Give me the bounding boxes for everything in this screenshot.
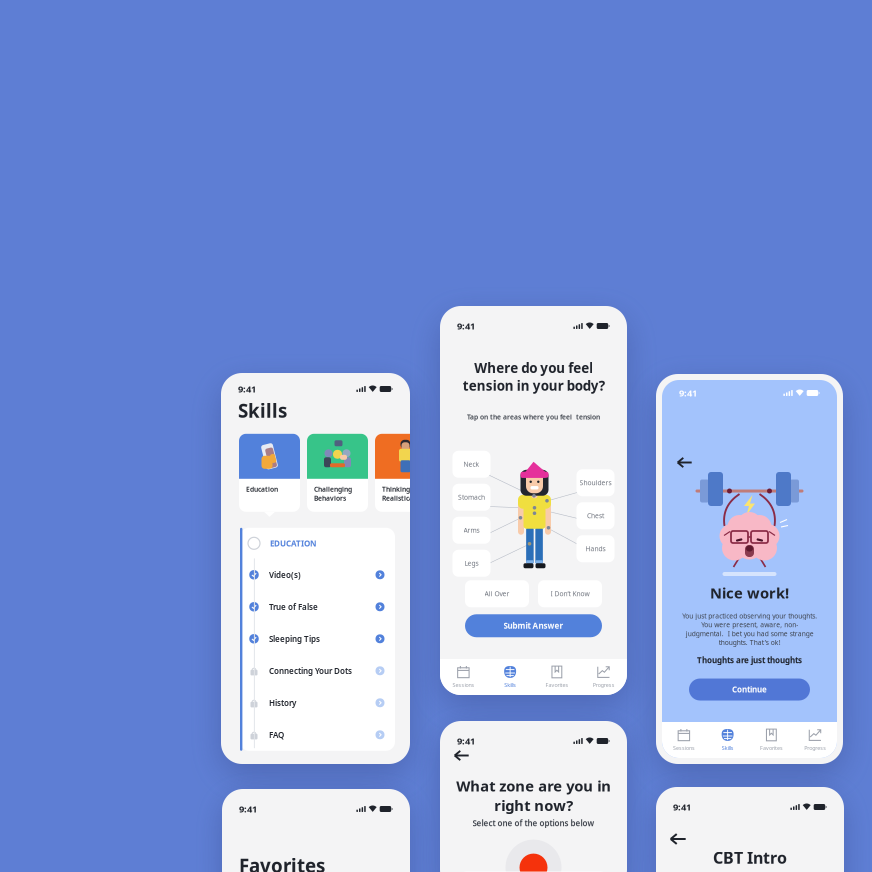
staticText: 9:41 (457, 320, 475, 332)
staticText: Nice work! (710, 583, 789, 602)
staticText: Chest (587, 511, 604, 520)
staticText: Connecting Your Dots (269, 665, 352, 676)
staticText: FAQ (269, 729, 284, 740)
staticText: Challenging Behaviors (314, 485, 352, 502)
button[interactable]: Submit Answer (465, 614, 602, 637)
button[interactable]: History (240, 687, 395, 719)
button[interactable]: All Over (465, 580, 529, 607)
button[interactable]: Chest (576, 502, 614, 529)
staticText: Video(s) (269, 569, 301, 580)
button[interactable]: Stomach (452, 484, 490, 511)
staticText: CBT Intro (713, 847, 787, 868)
button[interactable]: FAQ (240, 719, 395, 751)
staticText: EDUCATION (270, 538, 317, 549)
button[interactable]: Video(s) (240, 559, 395, 591)
staticText: Favorites (545, 681, 568, 689)
staticText: Sessions (452, 681, 474, 689)
button[interactable]: Continue (689, 678, 810, 700)
button[interactable]: Back (673, 451, 696, 474)
button[interactable]: Sleeping Tips (240, 623, 395, 655)
staticText: Arms (463, 526, 479, 535)
staticText: Progress (593, 681, 615, 689)
staticText: You just practiced observing your though… (682, 611, 817, 647)
staticText: 9:41 (679, 387, 697, 399)
button[interactable]: Skills (706, 724, 750, 755)
staticText: Skills (504, 681, 516, 689)
staticText: Select one of the options below (472, 818, 594, 829)
button[interactable]: Arms (452, 517, 490, 544)
staticText: All Over (484, 589, 509, 598)
button[interactable]: Hands (576, 535, 614, 562)
staticText: Hands (585, 544, 605, 553)
staticText: Skills (238, 398, 287, 423)
staticText: Skills (722, 744, 734, 752)
staticText: Favorites (239, 853, 325, 872)
staticText: History (269, 697, 296, 708)
staticText: Sessions (673, 744, 695, 752)
button[interactable]: Favorites (749, 724, 793, 755)
button[interactable]: Shoulders (576, 469, 614, 496)
button[interactable]: Back (451, 745, 472, 766)
button[interactable]: Sessions (440, 661, 487, 692)
staticText: 9:41 (457, 735, 475, 747)
staticText: True of False (269, 601, 318, 612)
staticText: 9:41 (673, 801, 691, 813)
staticText: Neck (463, 460, 479, 469)
button[interactable]: Challenging Behaviors (307, 434, 368, 512)
staticText: Shoulders (579, 478, 611, 487)
button[interactable]: Sessions (662, 724, 706, 755)
button[interactable]: Neck (452, 451, 490, 478)
staticText: I Don’t Know (550, 589, 589, 598)
staticText: 9:41 (239, 803, 257, 815)
button[interactable]: True of False (240, 591, 395, 623)
staticText: Stomach (458, 493, 485, 502)
button[interactable]: I Don’t Know (538, 580, 602, 607)
staticText: Tap on the areas where you feel tension (467, 412, 600, 421)
staticText: 9:41 (238, 383, 256, 395)
button[interactable]: Thinking Realistically (375, 434, 436, 512)
staticText: Sleeping Tips (269, 633, 320, 644)
staticText: Continue (732, 684, 767, 695)
staticText: Thinking Realistically (382, 485, 421, 502)
staticText: Education (246, 485, 278, 494)
button[interactable]: Skills (487, 661, 534, 692)
staticText: Progress (804, 744, 826, 752)
button[interactable]: Progress (580, 661, 627, 692)
staticText: Submit Answer (503, 620, 563, 631)
button[interactable]: Legs (452, 550, 490, 577)
staticText: Favorites (760, 744, 783, 752)
button[interactable]: Back (667, 828, 689, 850)
button[interactable]: Education (239, 434, 300, 512)
button[interactable]: Favorites (533, 661, 580, 692)
staticText: Where do you feel tension in your body? (462, 359, 604, 394)
staticText: Thoughts are just thoughts (697, 655, 802, 665)
staticText: What zone are you in right now? (456, 776, 611, 815)
button[interactable]: Connecting Your Dots (240, 655, 395, 687)
button[interactable]: Progress (793, 724, 837, 755)
staticText: Legs (464, 559, 478, 568)
